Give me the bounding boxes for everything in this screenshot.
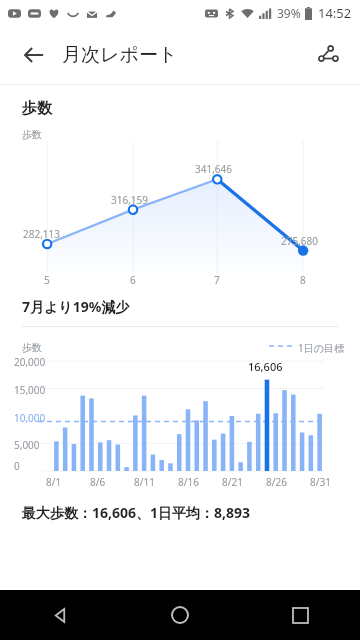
staticText: 341,646 [195, 162, 232, 176]
staticText: 8/11 [134, 475, 155, 489]
staticText: 8/31 [310, 475, 331, 489]
staticText: 歩数 [22, 341, 42, 354]
staticText: 歩数 [22, 128, 42, 141]
staticText: 10,000 [14, 411, 46, 425]
staticText: 8/21 [222, 475, 243, 489]
staticText: 5,000 [14, 438, 40, 452]
staticText: 8/16 [178, 475, 199, 489]
staticText: 8/6 [90, 475, 106, 489]
staticText: 20,000 [14, 355, 46, 369]
staticText: 1日の目標 [298, 341, 344, 355]
staticText: 歩数 [22, 99, 52, 118]
staticText: 8/1 [46, 475, 62, 489]
staticText: 15,000 [14, 383, 46, 397]
staticText: 5 [44, 273, 50, 287]
staticText: 275,680 [281, 234, 318, 248]
staticText: 14:52 [318, 4, 352, 22]
staticText: 282,113 [23, 227, 60, 241]
staticText: 8 [300, 273, 306, 287]
staticText: 39% [277, 5, 301, 21]
staticText: 6 [130, 273, 136, 287]
staticText: 0 [14, 459, 20, 473]
button[interactable]: Share [306, 33, 350, 77]
button[interactable]: Home [120, 590, 240, 640]
staticText: 最大歩数：16,606、1日平均：8,893 [22, 503, 251, 522]
button[interactable]: Back [0, 590, 120, 640]
staticText: 16,606 [248, 359, 283, 374]
staticText: 316,159 [111, 193, 148, 207]
staticText: 月次レポート [62, 43, 178, 67]
staticText: 7 [214, 273, 220, 287]
staticText: 8/26 [266, 475, 287, 489]
button[interactable]: Recents [240, 590, 360, 640]
button[interactable]: Back [12, 33, 56, 77]
staticText: 7月より19%減少 [22, 297, 130, 316]
